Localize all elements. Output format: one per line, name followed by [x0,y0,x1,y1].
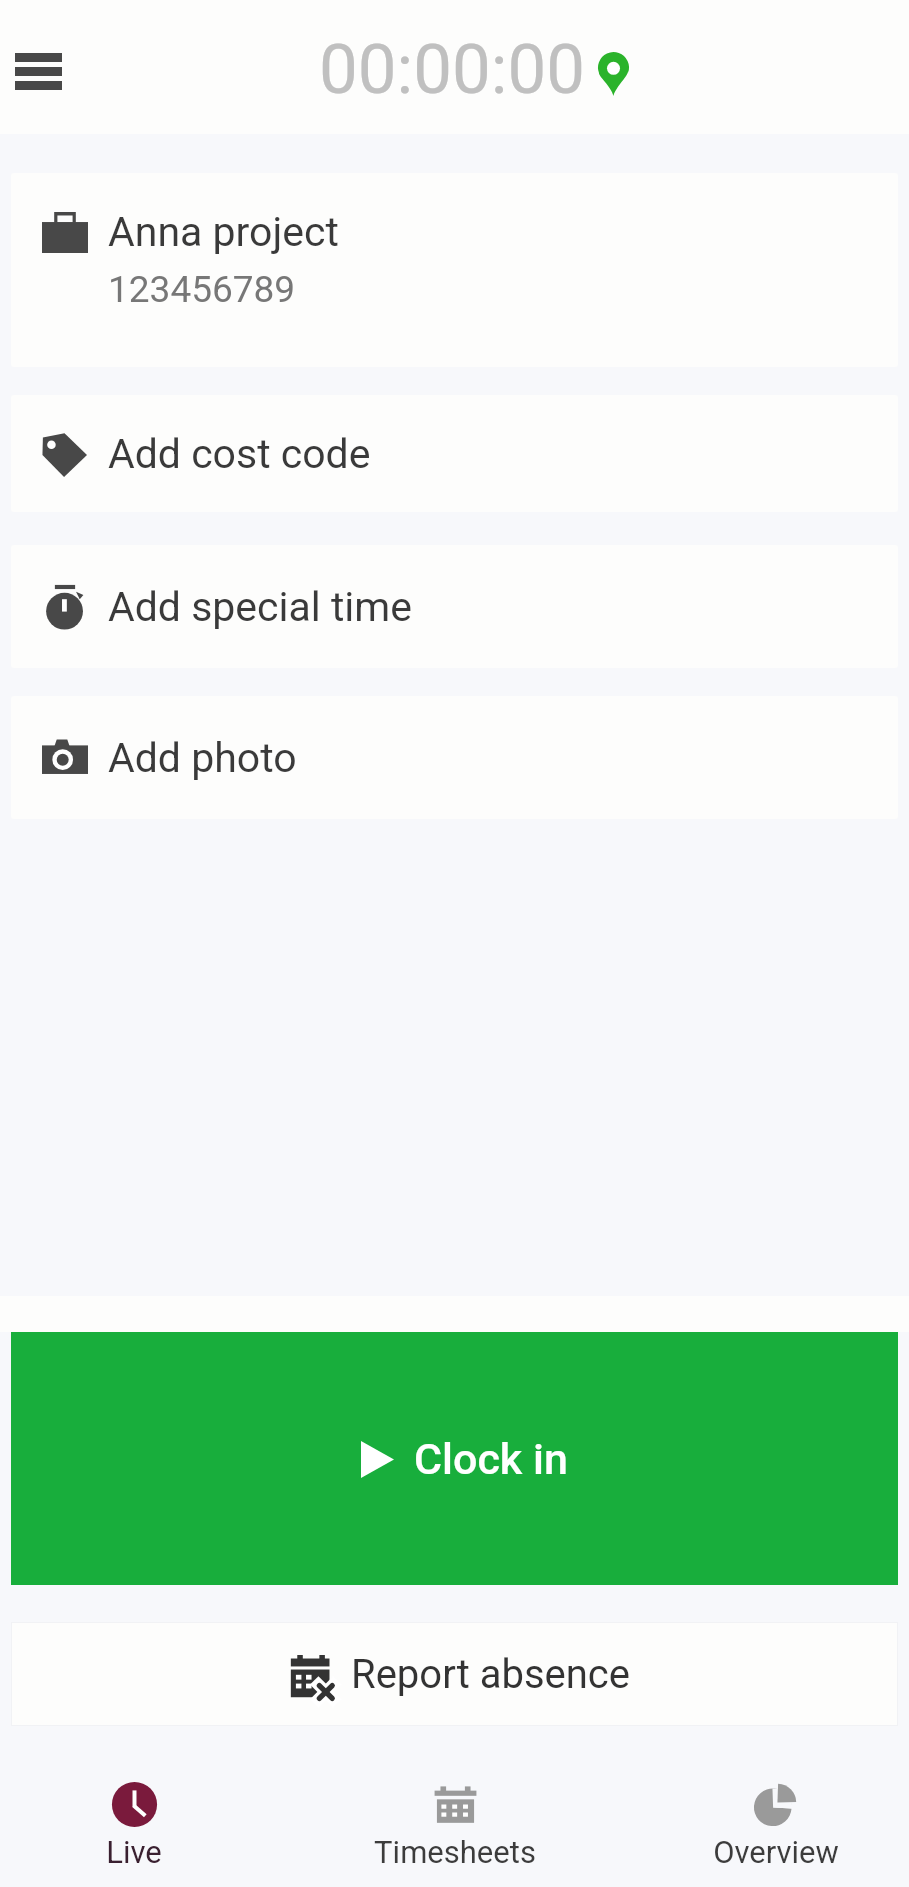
button[interactable]: Menu [2,35,74,107]
staticText: Add cost code [108,430,371,478]
button[interactable]: Add photo [11,696,898,819]
staticText: Report absence [351,1651,630,1698]
button[interactable]: Live [24,1726,244,1887]
staticText: 123456789 [108,268,296,311]
staticText: Overview [713,1834,839,1870]
button[interactable]: Timesheets [325,1726,585,1887]
staticText: Add photo [108,734,297,782]
staticText: Anna project [108,208,339,256]
button[interactable]: Overview [661,1726,891,1887]
staticText: Live [106,1834,162,1870]
button[interactable]: Add cost code [11,395,898,512]
button[interactable]: Anna project [11,173,898,367]
button[interactable]: Clock in [11,1332,898,1585]
button[interactable]: Add special time [11,545,898,668]
staticText: 00:00:00 [319,29,586,110]
button[interactable]: Report absence [11,1622,898,1726]
staticText: Timesheets [374,1834,536,1870]
staticText: Add special time [108,583,413,631]
staticText: Clock in [414,1434,568,1484]
